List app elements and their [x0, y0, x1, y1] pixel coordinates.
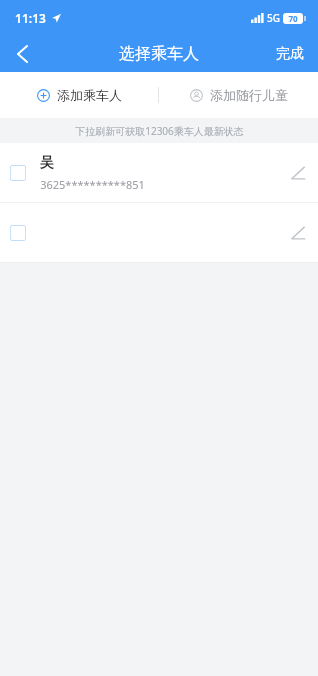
button[interactable]: Edit passenger: [278, 143, 318, 202]
button[interactable]: Select passenger: [10, 225, 26, 241]
button[interactable]: 完成: [262, 36, 318, 72]
button[interactable]: Select passenger: [10, 165, 26, 181]
button[interactable]: Back: [0, 36, 44, 72]
button[interactable]: 添加乘车人: [0, 72, 158, 118]
staticText: 3625**********851: [40, 177, 145, 192]
staticText: 11:13: [15, 10, 46, 26]
staticText: 添加乘车人: [57, 87, 122, 103]
staticText: 下拉刷新可获取12306乘车人最新状态: [75, 124, 244, 138]
staticText: 5G: [267, 11, 280, 25]
button[interactable]: Select passenger: [0, 143, 318, 202]
staticText: 添加随行儿童: [210, 87, 288, 103]
staticText: 选择乘车人: [119, 44, 199, 64]
button[interactable]: 添加随行儿童: [159, 72, 318, 118]
button[interactable]: Select passenger: [0, 203, 318, 262]
staticText: 70: [288, 13, 298, 24]
staticText: 完成: [276, 45, 304, 63]
button[interactable]: Edit passenger: [278, 203, 318, 262]
staticText: 吴: [40, 154, 54, 172]
